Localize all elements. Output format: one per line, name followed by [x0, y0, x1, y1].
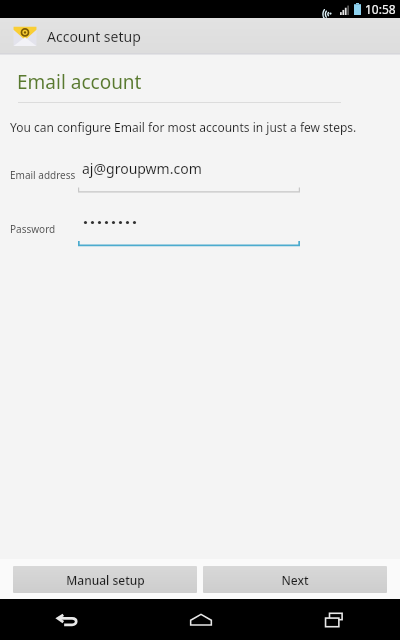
button[interactable]: Recent apps: [267, 599, 400, 640]
staticText: You can configure Email for most account…: [10, 119, 357, 135]
staticText: Password: [10, 222, 56, 236]
button[interactable]: [78, 211, 300, 247]
other: Email: [12, 23, 38, 49]
staticText: Manual setup: [66, 572, 145, 588]
button[interactable]: Email: [0, 18, 400, 53]
button[interactable]: Next: [203, 566, 387, 593]
button[interactable]: aj@groupwm.com: [78, 157, 300, 193]
staticText: aj@groupwm.com: [82, 159, 202, 178]
staticText: Account setup: [47, 27, 141, 46]
button[interactable]: Home: [134, 599, 267, 640]
staticText: Email address: [10, 168, 76, 182]
staticText: Email account: [17, 69, 142, 95]
button[interactable]: Manual setup: [13, 566, 197, 593]
staticText: 10:58: [365, 1, 396, 17]
staticText: Next: [281, 572, 309, 588]
button[interactable]: Back: [0, 599, 134, 640]
